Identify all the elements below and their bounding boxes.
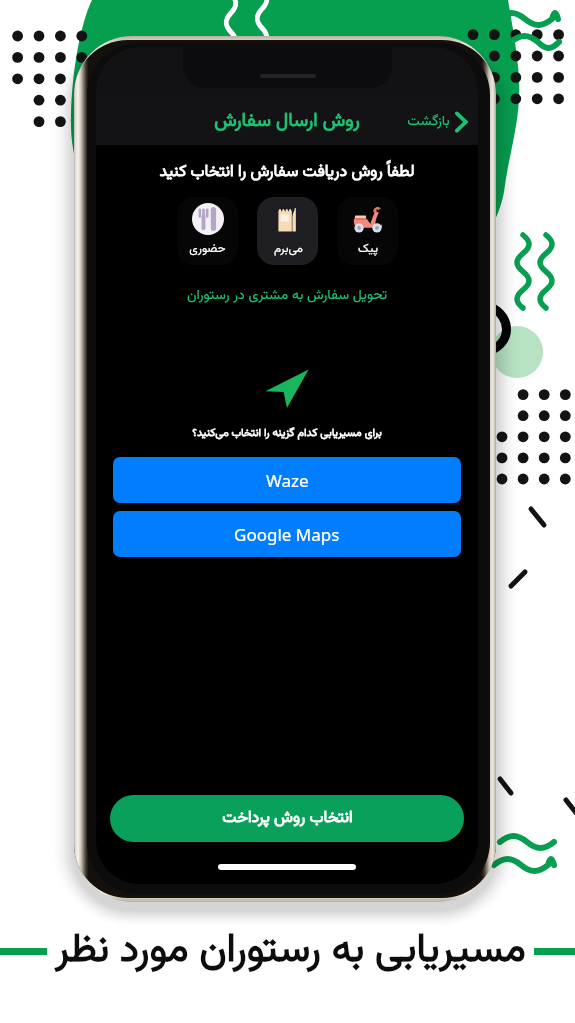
staticText: Google Maps	[234, 523, 340, 546]
staticText: لطفاً روش دریافت سفارش را انتخاب کنید	[96, 160, 478, 185]
button[interactable]: انتخاب روش پرداخت	[110, 795, 464, 842]
staticText: می‌برم	[274, 240, 303, 259]
button[interactable]: Waze	[113, 457, 461, 503]
button[interactable]: Google Maps	[113, 511, 461, 557]
staticText: انتخاب روش پرداخت	[222, 806, 353, 831]
button[interactable]: می‌برم	[257, 197, 318, 265]
staticText: بازگشت	[407, 111, 450, 133]
button[interactable]: پیک	[337, 197, 398, 265]
staticText: برای مسیریابی کدام گزینه را انتخاب می‌کن…	[96, 425, 478, 442]
staticText: Waze	[266, 469, 309, 492]
staticText: پیک	[358, 240, 378, 259]
staticText: مسیریابی به رستوران مورد نظر	[55, 920, 526, 983]
button[interactable]: بازگشت	[404, 105, 471, 139]
staticText: روش ارسال سفارش	[214, 107, 360, 137]
button[interactable]: حضوری	[177, 197, 238, 265]
staticText: حضوری	[189, 240, 226, 259]
staticText: تحویل سفارش به مشتری در رستوران	[96, 285, 478, 307]
